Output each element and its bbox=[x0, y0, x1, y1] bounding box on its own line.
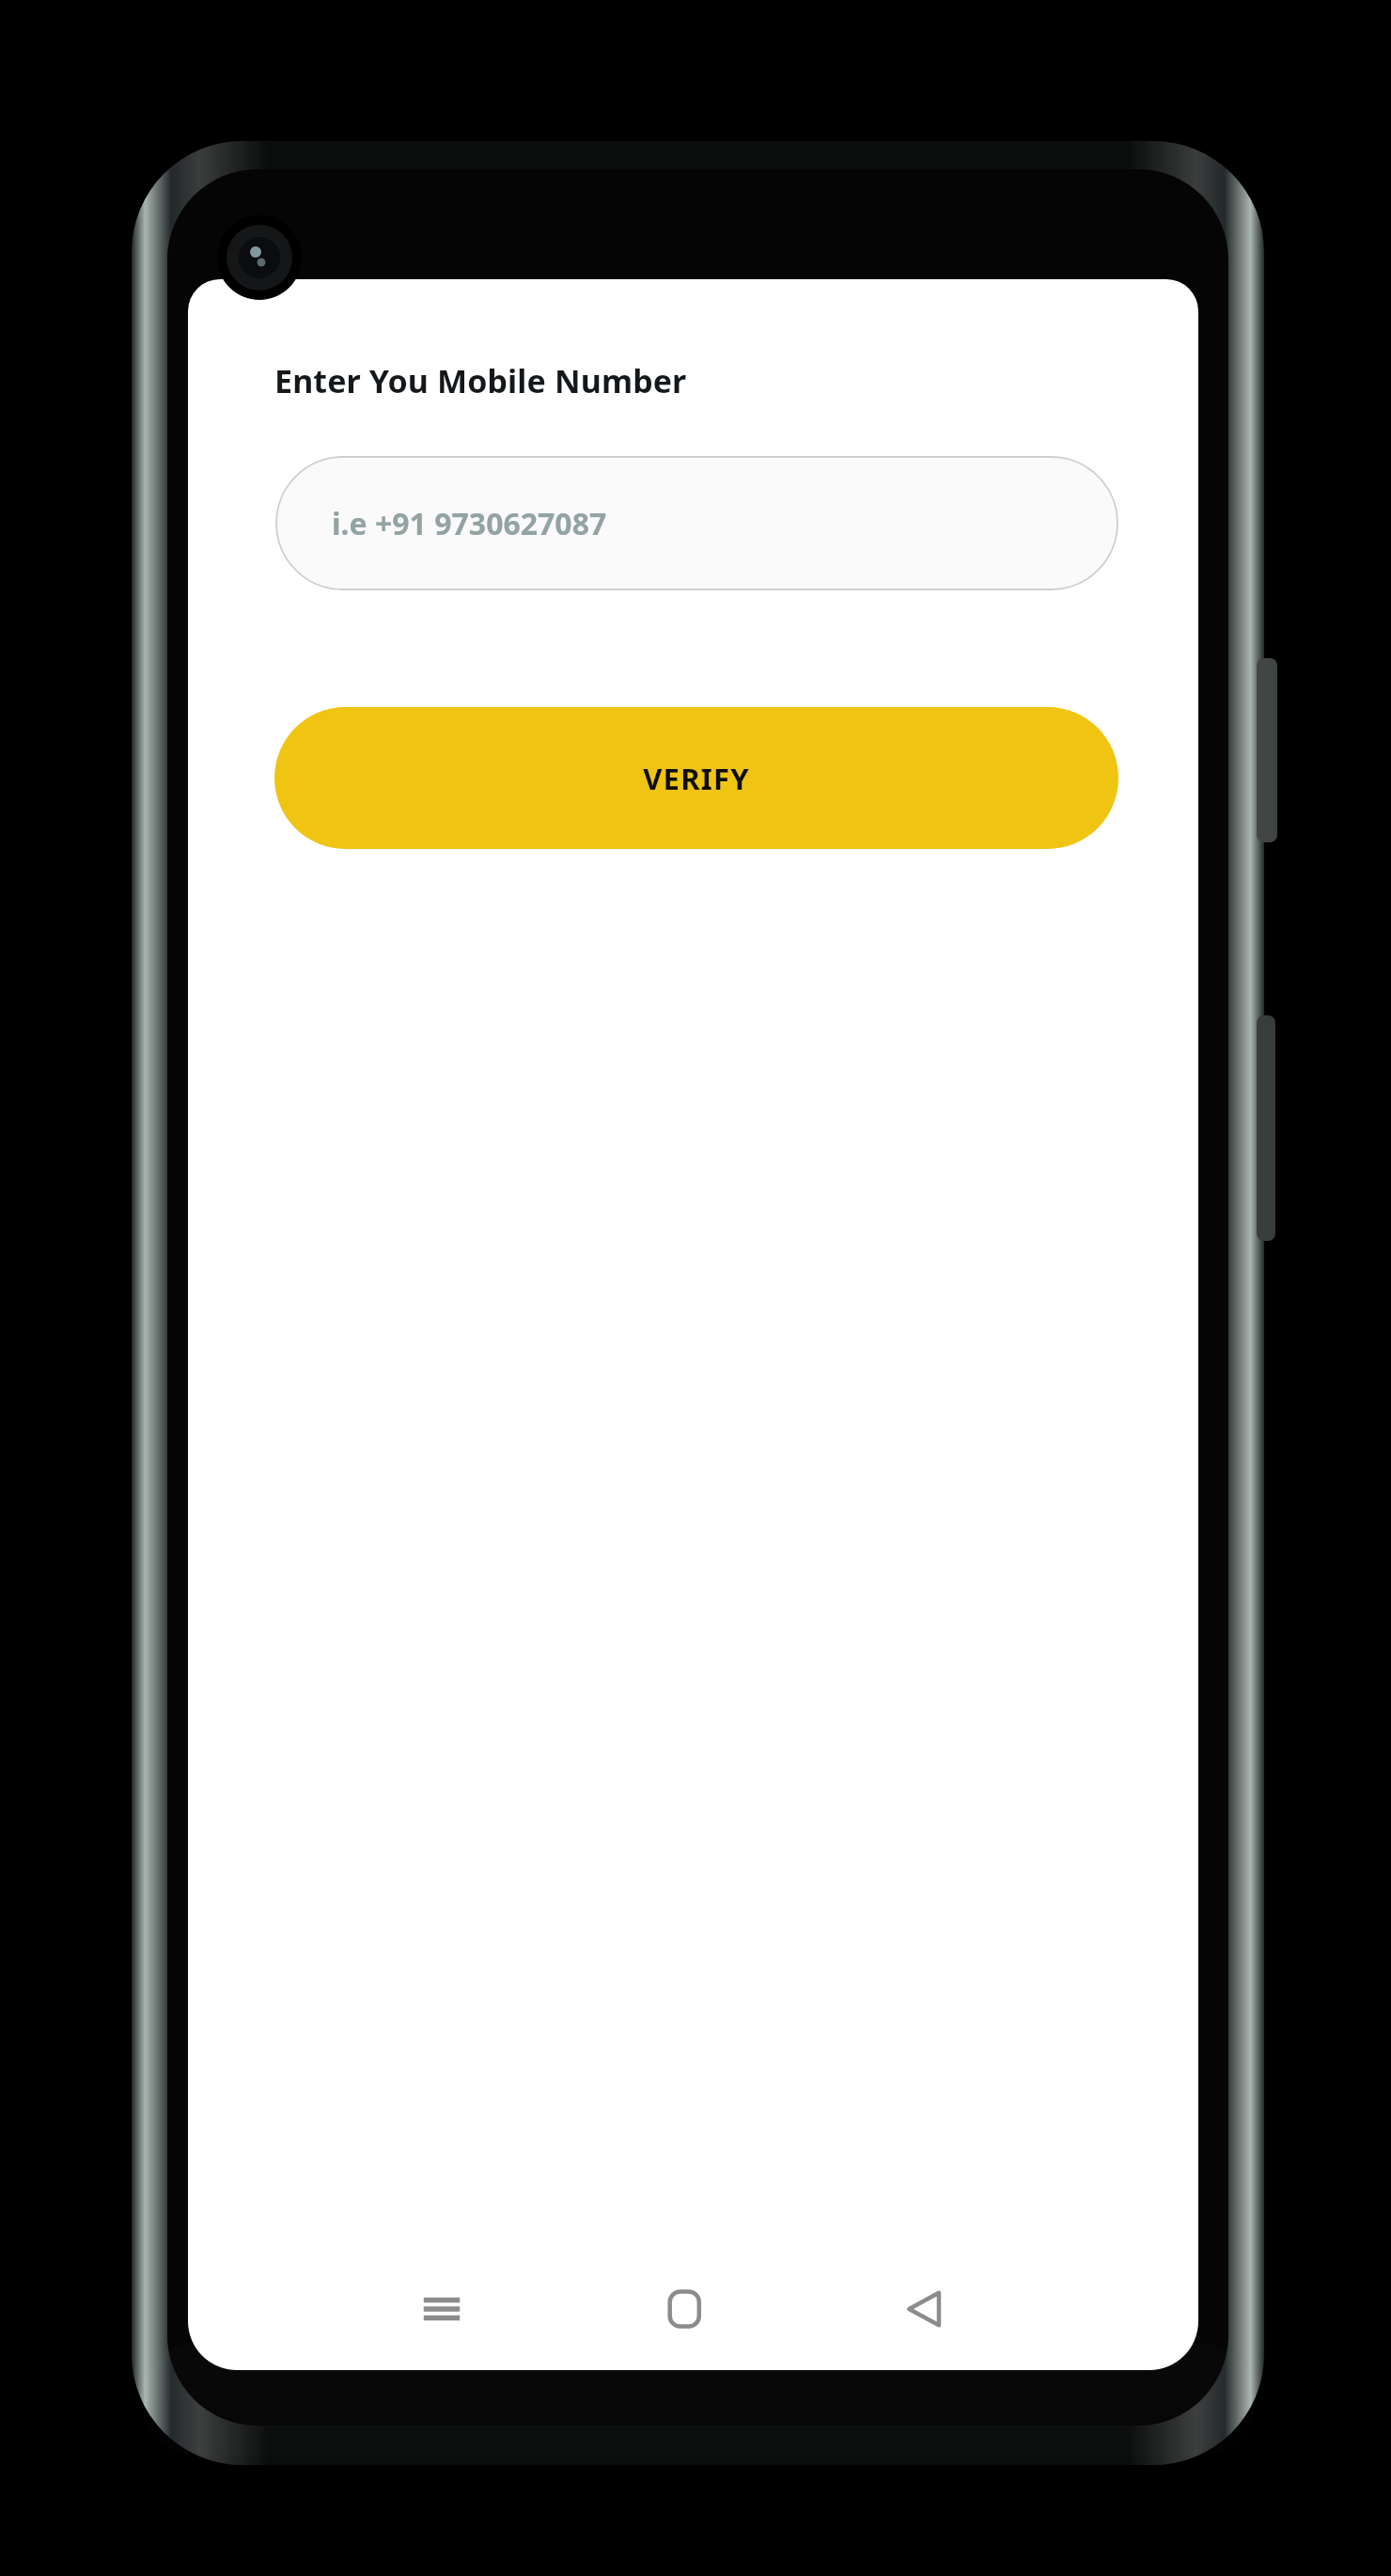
staticText: VERIFY bbox=[643, 759, 750, 798]
button[interactable]: i.e +91 9730627087 bbox=[275, 456, 1118, 590]
button[interactable]: Recent apps bbox=[397, 2264, 487, 2354]
button[interactable]: Home bbox=[638, 2264, 728, 2354]
button[interactable]: Back bbox=[880, 2264, 970, 2354]
staticText: i.e +91 9730627087 bbox=[332, 503, 607, 544]
button[interactable]: VERIFY bbox=[274, 707, 1118, 849]
staticText: Enter You Mobile Number bbox=[274, 359, 687, 402]
